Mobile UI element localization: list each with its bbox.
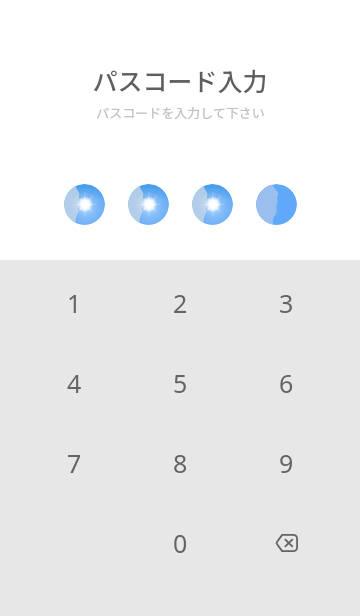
button[interactable]: 0 [127, 503, 233, 583]
button[interactable]: 9 [233, 423, 339, 503]
staticText: 4 [67, 366, 82, 400]
staticText: 8 [173, 446, 188, 480]
button[interactable]: Backspace [233, 503, 339, 583]
staticText: 9 [279, 446, 294, 480]
staticText: 5 [173, 366, 188, 400]
staticText: 6 [279, 366, 294, 400]
staticText: 2 [173, 286, 188, 320]
staticText: 3 [279, 286, 294, 320]
other: Backspace [266, 523, 306, 563]
button[interactable]: 2 [127, 263, 233, 343]
button[interactable]: 4 [21, 343, 127, 423]
staticText: 0 [173, 526, 188, 560]
button[interactable]: 5 [127, 343, 233, 423]
staticText: 7 [67, 446, 82, 480]
button[interactable]: 8 [127, 423, 233, 503]
staticText: パスコードを入力して下さい [96, 103, 265, 122]
staticText: 1 [67, 286, 82, 320]
button[interactable]: 7 [21, 423, 127, 503]
button[interactable]: 6 [233, 343, 339, 423]
button[interactable]: 1 [21, 263, 127, 343]
button[interactable]: 3 [233, 263, 339, 343]
staticText: パスコード入力 [92, 62, 268, 98]
